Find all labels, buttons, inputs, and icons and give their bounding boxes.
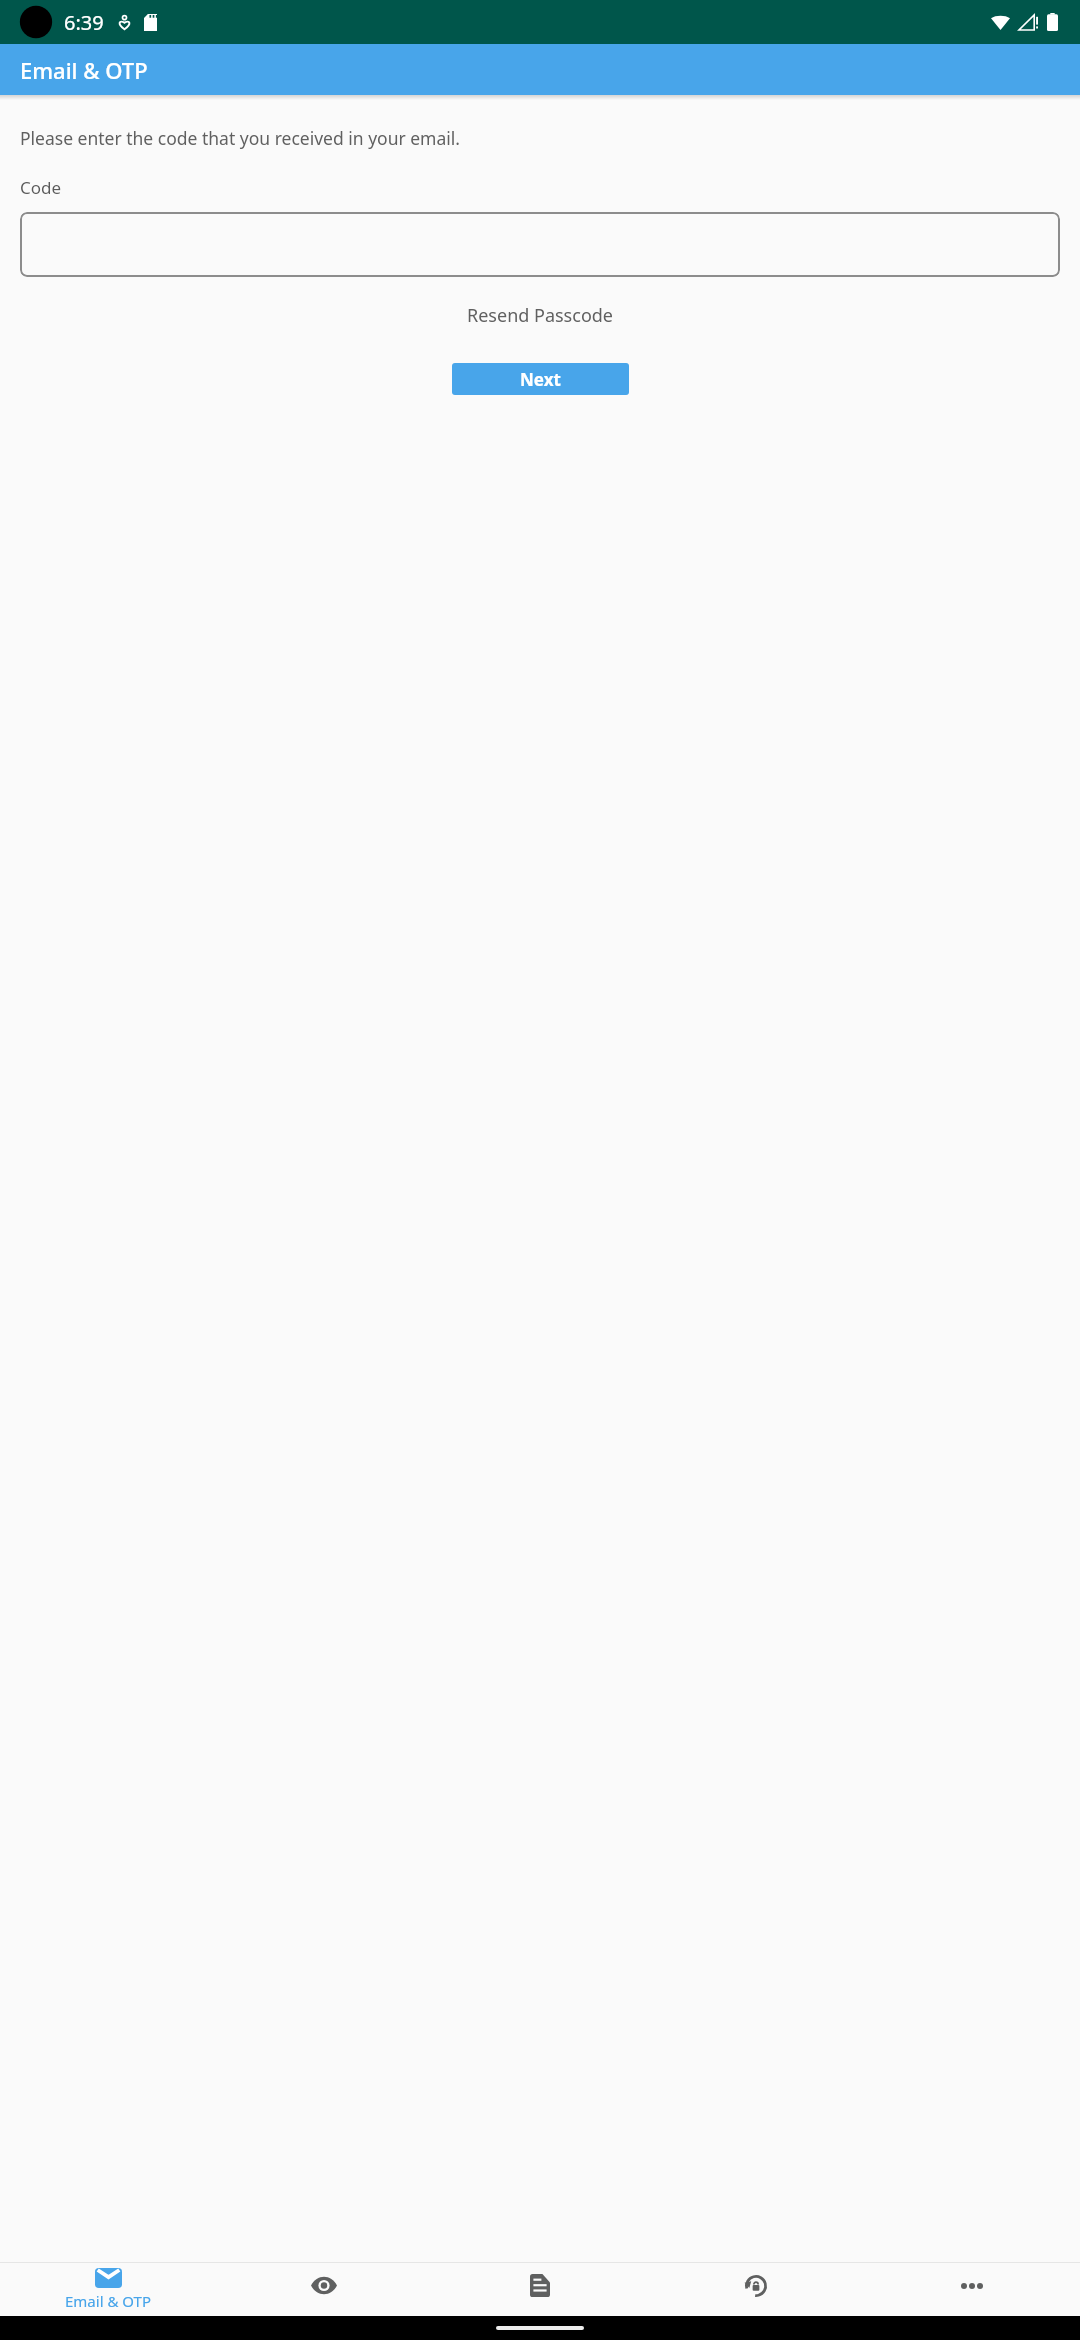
staticText: Next [520, 368, 561, 391]
button[interactable]: View [303, 2269, 345, 2302]
staticText: Code [20, 176, 62, 199]
button[interactable]: Reset password [736, 2266, 776, 2306]
staticText: 6:39 [64, 9, 104, 36]
staticText: Email & OTP [65, 2291, 151, 2311]
button[interactable]: Documents [522, 2266, 558, 2305]
staticText: Please enter the code that you received … [20, 126, 461, 150]
button[interactable] [20, 212, 1060, 277]
button[interactable]: Email & OTP [61, 2266, 155, 2313]
button[interactable]: Next [452, 363, 629, 395]
button[interactable]: Resend Passcode [461, 299, 619, 332]
staticText: Email & OTP [20, 55, 148, 85]
button[interactable]: More [953, 2275, 991, 2297]
